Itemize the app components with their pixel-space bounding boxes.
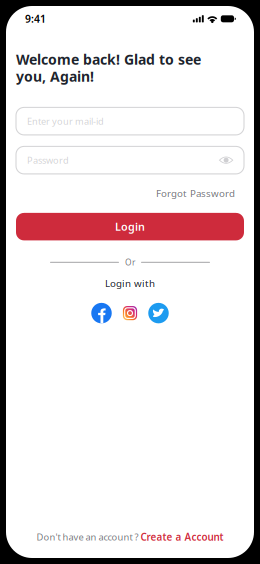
staticText: Password: [27, 154, 69, 166]
staticText: Enter your mail-id: [27, 115, 104, 127]
staticText: you, Again!: [16, 67, 94, 86]
staticText: Forgot Password: [156, 186, 235, 200]
button[interactable]: Login: [16, 213, 244, 240]
staticText: Welcome back! Glad to see: [16, 50, 201, 69]
staticText: Login with: [105, 276, 155, 290]
button[interactable]: Sign in with Twitter: [148, 303, 169, 323]
button[interactable]: Forgot Password: [16, 187, 244, 199]
button[interactable]: Don't have an account ?: [36, 530, 223, 544]
staticText: Or: [125, 257, 135, 268]
button[interactable]: Sign in with Facebook: [91, 303, 112, 323]
staticText: 9:41: [25, 12, 46, 26]
staticText: Login: [115, 219, 145, 234]
staticText: Create a Account: [140, 530, 223, 544]
button[interactable]: Sign in with Instagram: [120, 303, 140, 323]
staticText: Don't have an account ?: [36, 531, 140, 543]
